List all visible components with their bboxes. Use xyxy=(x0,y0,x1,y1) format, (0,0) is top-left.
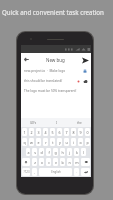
button[interactable]: 3 xyxy=(36,128,41,136)
button[interactable]: d xyxy=(39,148,44,156)
staticText: r xyxy=(45,140,47,145)
staticText: the xyxy=(77,121,82,125)
button[interactable] xyxy=(22,158,30,166)
staticText: l xyxy=(83,150,84,155)
staticText: The logo must be 50% transparent! xyxy=(24,89,82,93)
staticText: m xyxy=(75,160,79,165)
staticText: d xyxy=(40,150,43,155)
staticText: 1 xyxy=(23,130,26,135)
button[interactable]: w xyxy=(29,138,34,146)
button[interactable]: k xyxy=(74,148,79,156)
staticText: j xyxy=(69,150,70,155)
button[interactable]: i xyxy=(71,138,76,146)
staticText: 0 xyxy=(86,130,89,135)
staticText: new-project.io · Make logo transparent xyxy=(24,69,82,73)
button[interactable]: e xyxy=(36,138,41,146)
staticText: z xyxy=(34,160,36,165)
button[interactable]: v xyxy=(53,158,58,166)
button[interactable]: this should be translated/consolidated..… xyxy=(24,76,88,86)
button[interactable]: , xyxy=(32,168,37,176)
staticText: i xyxy=(73,140,74,145)
staticText: q xyxy=(23,140,26,145)
staticText: p xyxy=(86,140,89,145)
staticText: English xyxy=(51,170,61,174)
staticText: 3 xyxy=(37,130,40,135)
button[interactable]: Back xyxy=(21,54,32,65)
staticText: n xyxy=(68,160,71,165)
button[interactable]: u xyxy=(64,138,69,146)
button[interactable]: z xyxy=(32,158,37,166)
staticText: y xyxy=(59,140,61,145)
button[interactable]: x xyxy=(39,158,44,166)
button[interactable]: c xyxy=(46,158,51,166)
staticText: a xyxy=(27,150,30,155)
staticText: 7 xyxy=(65,130,68,135)
staticText: x xyxy=(41,160,43,165)
button[interactable]: b xyxy=(60,158,65,166)
staticText: 6 xyxy=(58,130,61,135)
staticText: f xyxy=(48,150,50,155)
staticText: k xyxy=(76,150,78,155)
staticText: this should be translated/consolidated..… xyxy=(24,79,77,83)
button[interactable]: l xyxy=(81,148,86,156)
button[interactable]: 0 xyxy=(85,128,90,136)
button[interactable]: 2 xyxy=(29,128,34,136)
button[interactable]: f xyxy=(46,148,51,156)
staticText: 5 xyxy=(51,130,54,135)
staticText: s xyxy=(34,150,36,155)
button[interactable]: . xyxy=(74,168,79,176)
staticText: GIFs xyxy=(30,121,37,125)
staticText: v xyxy=(55,160,57,165)
staticText: 4 xyxy=(44,130,47,135)
staticText: ?123 xyxy=(23,170,30,174)
button[interactable]: The logo must be 50% transparent! xyxy=(24,86,88,96)
staticText: c xyxy=(48,160,50,165)
button[interactable]: g xyxy=(53,148,58,156)
staticText: I xyxy=(56,121,58,125)
button[interactable]: q xyxy=(22,138,27,146)
button[interactable]: Send xyxy=(79,54,91,66)
button[interactable]: 5 xyxy=(50,128,55,136)
button[interactable] xyxy=(81,168,90,176)
button[interactable]: 1 xyxy=(22,128,27,136)
button[interactable]: 7 xyxy=(64,128,69,136)
staticText: w xyxy=(30,140,33,145)
button[interactable]: ?123 xyxy=(22,168,30,176)
button[interactable]: r xyxy=(43,138,48,146)
button[interactable]: 9 xyxy=(78,128,83,136)
button[interactable]: English xyxy=(39,168,72,176)
staticText: u xyxy=(65,140,68,145)
staticText: b xyxy=(61,160,64,165)
staticText: g xyxy=(54,150,57,155)
button[interactable] xyxy=(81,158,90,166)
button[interactable]: j xyxy=(67,148,72,156)
staticText: , xyxy=(34,170,35,174)
button[interactable]: n xyxy=(67,158,72,166)
button[interactable]: h xyxy=(60,148,65,156)
button[interactable]: 4 xyxy=(43,128,48,136)
button[interactable]: t xyxy=(50,138,55,146)
staticText: 9 xyxy=(79,130,82,135)
button[interactable]: y xyxy=(57,138,62,146)
button[interactable]: new-project.io · Make logo transparent xyxy=(24,66,88,76)
staticText: Quick and convenient task creation xyxy=(2,8,104,16)
staticText: h xyxy=(61,150,64,155)
staticText: e xyxy=(37,140,40,145)
staticText: t xyxy=(52,140,54,145)
button[interactable]: 8 xyxy=(71,128,76,136)
button[interactable]: o xyxy=(78,138,83,146)
staticText: . xyxy=(76,170,77,174)
button[interactable]: a xyxy=(26,148,30,156)
staticText: 2 xyxy=(30,130,33,135)
button[interactable]: m xyxy=(74,158,79,166)
button[interactable]: 6 xyxy=(57,128,62,136)
button[interactable]: p xyxy=(85,138,90,146)
button[interactable]: s xyxy=(32,148,37,156)
staticText: o xyxy=(79,140,82,145)
staticText: 8 xyxy=(72,130,75,135)
staticText: New bug xyxy=(46,57,65,63)
